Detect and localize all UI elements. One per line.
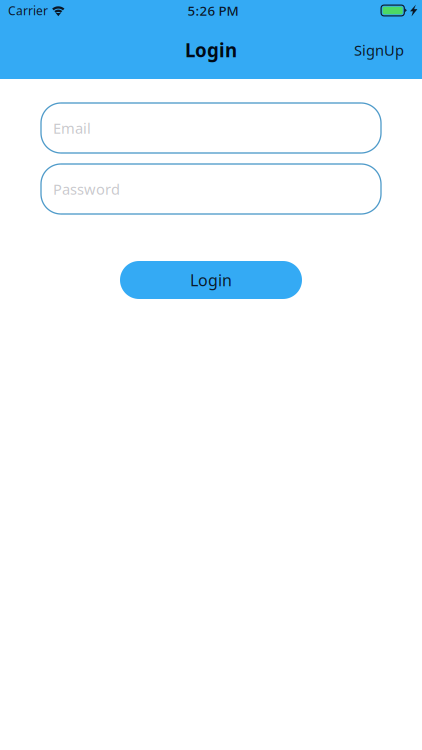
staticText: Carrier <box>8 2 48 18</box>
staticText: Login <box>185 38 237 62</box>
staticText: Email <box>53 118 91 138</box>
button[interactable]: Login <box>120 261 302 299</box>
staticText: 5:26 PM <box>187 2 238 19</box>
button[interactable]: SignUp <box>354 32 422 68</box>
staticText: Login <box>190 269 232 291</box>
staticText: SignUp <box>354 40 404 60</box>
button[interactable]: Password <box>41 164 381 214</box>
button[interactable]: Email <box>41 103 381 153</box>
staticText: Password <box>53 179 120 199</box>
